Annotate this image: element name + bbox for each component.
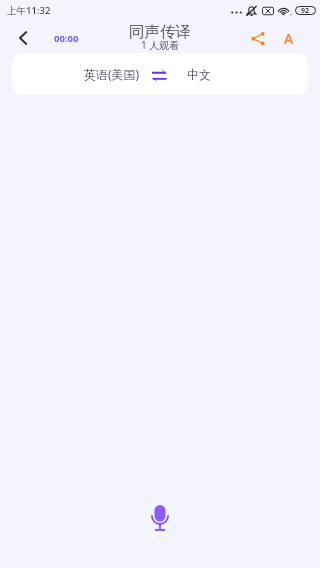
staticText: 同声传译 xyxy=(129,22,191,42)
button[interactable]: Back xyxy=(5,22,41,54)
staticText: 中文 xyxy=(187,67,211,82)
button[interactable]: Share xyxy=(242,22,274,54)
staticText: 英语(美国) xyxy=(84,66,140,82)
staticText: A xyxy=(284,29,294,48)
button[interactable]: Start recording xyxy=(132,490,188,546)
button[interactable]: Text size xyxy=(273,22,305,54)
staticText: 00:00 xyxy=(54,32,79,45)
button[interactable]: 00:00 xyxy=(48,26,88,50)
staticText: 上午11:32 xyxy=(7,4,51,17)
button[interactable]: 英语(美国) xyxy=(12,53,308,95)
staticText: 92 xyxy=(301,6,310,15)
staticText: 1 人观看 xyxy=(141,38,180,52)
